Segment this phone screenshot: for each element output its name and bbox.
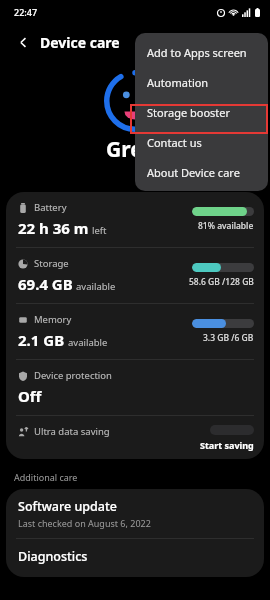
staticText: available: [76, 280, 116, 293]
staticText: Automation: [147, 75, 209, 90]
staticText: Ultra data saving: [34, 425, 110, 438]
button[interactable]: Storage: [6, 248, 264, 303]
button[interactable]: Ultra data saving: [6, 416, 264, 459]
button[interactable]: Battery: [6, 192, 264, 247]
staticText: 58.6 GB /128 GB: [189, 276, 254, 288]
staticText: left: [92, 224, 107, 237]
button[interactable]: Diagnostics: [6, 539, 264, 577]
button[interactable]: Automation: [135, 67, 268, 97]
staticText: 69.4 GB: [18, 274, 73, 294]
staticText: available: [68, 336, 108, 349]
staticText: Device protection: [34, 369, 112, 382]
staticText: 2.1 GB: [18, 330, 65, 350]
button[interactable]: Software update: [6, 489, 264, 538]
button[interactable]: Storage booster: [135, 97, 268, 127]
button[interactable]: Add to Apps screen: [135, 37, 268, 67]
staticText: 3.3 GB /6 GB: [203, 332, 254, 344]
staticText: Contact us: [147, 135, 202, 150]
button[interactable]: Memory: [6, 304, 264, 359]
staticText: 22 h 36 m: [18, 218, 89, 238]
staticText: 22:47: [14, 6, 38, 18]
staticText: Storage booster: [147, 105, 231, 120]
button[interactable]: Ultra data saving toggle: [210, 425, 254, 435]
staticText: Start saving: [200, 439, 254, 451]
staticText: Storage: [34, 257, 69, 270]
button[interactable]: Back: [12, 31, 34, 53]
staticText: Software update: [18, 498, 117, 515]
staticText: 81% available: [198, 220, 254, 232]
button[interactable]: Contact us: [135, 127, 268, 157]
staticText: Memory: [34, 313, 72, 326]
button[interactable]: About Device care: [135, 157, 268, 187]
staticText: Add to Apps screen: [147, 45, 247, 60]
staticText: About Device care: [147, 165, 240, 180]
staticText: Last checked on August 6, 2022: [18, 517, 151, 529]
staticText: Diagnostics: [18, 548, 88, 565]
staticText: Off: [18, 386, 42, 406]
staticText: Device care: [40, 33, 120, 52]
staticText: Additional care: [14, 471, 78, 483]
staticText: Battery: [34, 201, 67, 214]
button[interactable]: Device protection: [6, 360, 264, 415]
staticText: Great: [106, 135, 165, 164]
